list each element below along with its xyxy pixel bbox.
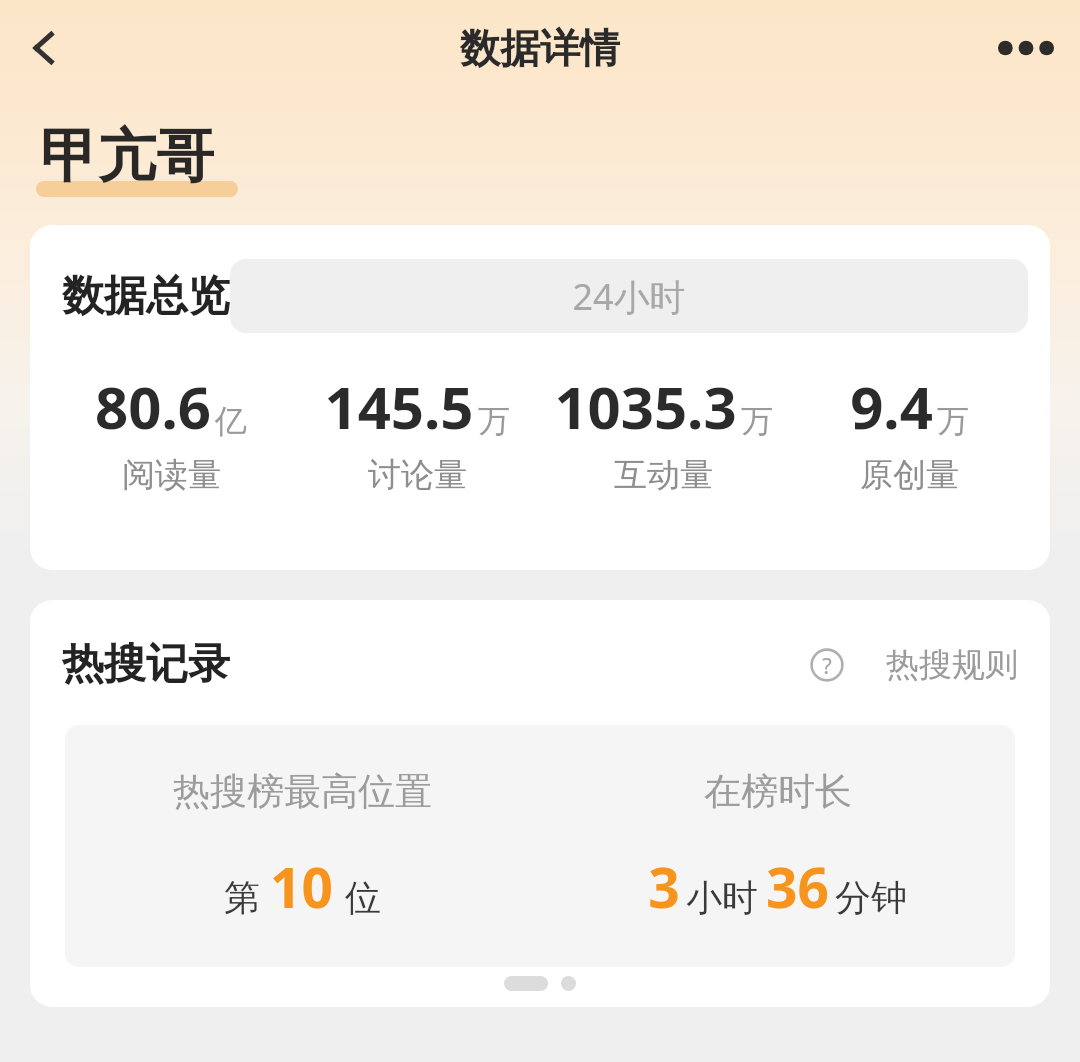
staticText: 第 <box>224 875 260 920</box>
staticText: 万 <box>478 401 510 441</box>
staticText: ? <box>822 650 832 680</box>
button[interactable]: 甲亢哥 <box>36 120 238 199</box>
button[interactable]: More options <box>990 12 1062 84</box>
button[interactable]: 24小时 <box>230 259 1028 333</box>
staticText: 10 <box>270 849 333 924</box>
button[interactable]: 9.4 <box>786 367 1032 496</box>
staticText: 数据总览 <box>62 270 230 323</box>
staticText: 热搜规则 <box>886 644 1018 686</box>
staticText: 80.6 <box>95 367 211 446</box>
staticText: 讨论量 <box>368 454 467 496</box>
staticText: 互动量 <box>614 454 713 496</box>
staticText: 阅读量 <box>122 454 221 496</box>
staticText: 热搜记录 <box>62 638 230 691</box>
staticText: 亿 <box>215 401 247 441</box>
staticText: 145.5 <box>324 367 474 446</box>
button[interactable]: 80.6 <box>48 367 294 496</box>
staticText: 万 <box>741 401 773 441</box>
button[interactable]: ? <box>806 640 1022 690</box>
staticText: 在榜时长 <box>704 768 852 815</box>
staticText: 数据详情 <box>460 23 620 73</box>
button[interactable]: 145.5 <box>294 367 540 496</box>
button[interactable]: 1035.3 <box>540 367 786 496</box>
staticText: 原创量 <box>860 454 959 496</box>
staticText: 3 <box>648 849 680 924</box>
staticText: 1035.3 <box>554 367 737 446</box>
staticText: 热搜榜最高位置 <box>173 768 432 815</box>
staticText: 位 <box>345 875 381 920</box>
staticText: 24小时 <box>572 272 686 321</box>
staticText: 36 <box>766 849 829 924</box>
staticText: 万 <box>937 401 969 441</box>
staticText: 9.4 <box>850 367 933 446</box>
button[interactable]: Back <box>8 12 80 84</box>
staticText: 分钟 <box>835 875 907 920</box>
staticText: 小时 <box>686 875 758 920</box>
staticText: 甲亢哥 <box>40 120 214 193</box>
